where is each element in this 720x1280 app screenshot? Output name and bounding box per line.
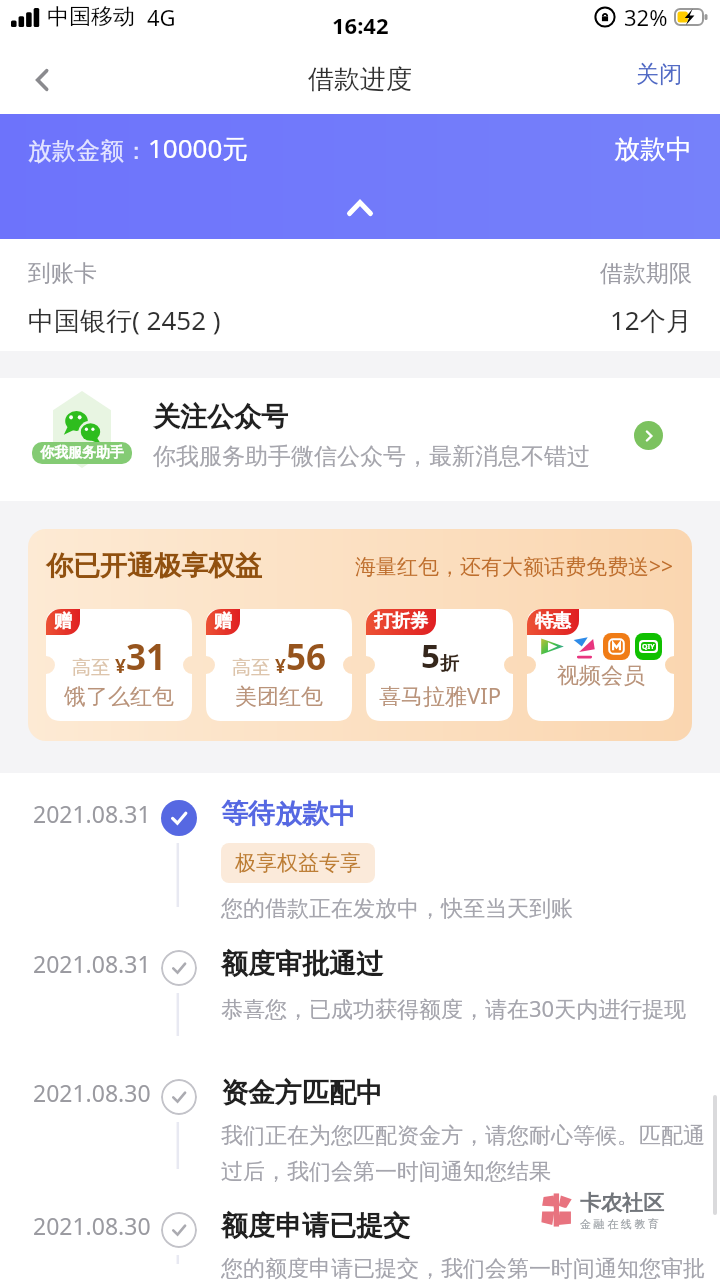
staticText: 赠 (54, 610, 72, 633)
button[interactable]: 关闭 (622, 51, 720, 108)
staticText: 特惠 (535, 610, 571, 633)
staticText: 2021.08.30 (33, 1210, 151, 1241)
staticText: 你我服务助手微信公众号，最新消息不错过 (153, 442, 590, 471)
staticText: 5 (421, 633, 440, 678)
staticText: 打折券 (374, 610, 428, 633)
staticText: 2021.08.31 (33, 798, 151, 829)
staticText: 等待放款中 (221, 797, 356, 831)
staticText: 折 (440, 652, 459, 676)
staticText: ¥ (115, 653, 126, 679)
staticText: ¥ (275, 653, 286, 679)
staticText: 海量红包，还有大额话费免费送>> (355, 552, 674, 581)
staticText: 到账卡 (28, 259, 97, 288)
staticText: 额度审批通过 (221, 947, 383, 981)
staticText: 56 (286, 633, 327, 681)
staticText: 借款期限 (600, 259, 692, 288)
staticText: 视频会员 (557, 662, 645, 690)
staticText: 赠 (214, 610, 232, 633)
button[interactable]: Open (634, 421, 663, 450)
staticText: 放款金额： (28, 136, 148, 166)
staticText: 饿了么红包 (64, 683, 174, 711)
staticText: 2021.08.31 (33, 948, 151, 979)
staticText: 金融在线教育 (580, 1217, 662, 1231)
button[interactable]: 5 (366, 609, 513, 721)
staticText: 卡农社区 (580, 1190, 664, 1216)
button[interactable]: 高至 (206, 609, 352, 721)
staticText: 4G (147, 2, 176, 32)
button[interactable]: Back (16, 54, 68, 106)
staticText: 借款进度 (308, 63, 412, 96)
staticText: 极享权益专享 (235, 850, 361, 876)
staticText: 10000元 (148, 130, 249, 166)
staticText: 资金方匹配中 (221, 1076, 383, 1110)
staticText: 你我服务助手 (40, 444, 124, 462)
staticText: 31 (126, 633, 167, 681)
staticText: 你已开通极享权益 (46, 549, 262, 583)
button[interactable]: 你我服务助手 (0, 378, 720, 493)
staticText: 高至 (72, 656, 110, 680)
staticText: 12个月 (610, 302, 692, 338)
staticText: 我们正在为您匹配资金方，请您耐心等候。匹配通过后，我们会第一时间通知您结果 (221, 1122, 716, 1185)
staticText: 32% (624, 2, 668, 32)
staticText: 16:42 (332, 10, 389, 40)
button[interactable]: 你已开通极享权益 (28, 529, 692, 741)
staticText: QIY (642, 642, 655, 651)
button[interactable]: QIY (527, 609, 674, 721)
staticText: 您的借款正在发放中，快至当天到账 (221, 895, 573, 923)
staticText: 额度申请已提交 (221, 1209, 410, 1243)
staticText: 喜马拉雅VIP (379, 680, 501, 710)
staticText: 2021.08.30 (33, 1077, 151, 1108)
staticText: 关闭 (636, 60, 682, 89)
staticText: 中国移动 (47, 3, 135, 31)
staticText: 美团红包 (235, 683, 323, 711)
staticText: 恭喜您，已成功获得额度，请在30天内进行提现 (221, 993, 687, 1023)
button[interactable]: 高至 (46, 609, 192, 721)
staticText: 中国银行( 2452 ) (28, 302, 221, 338)
staticText: 高至 (232, 656, 270, 680)
button[interactable]: Collapse (335, 183, 385, 233)
staticText: 放款中 (614, 133, 692, 166)
staticText: 关注公众号 (153, 400, 288, 434)
staticText: 您的额度申请已提交，我们会第一时间通知您审批结果 (221, 1255, 716, 1280)
